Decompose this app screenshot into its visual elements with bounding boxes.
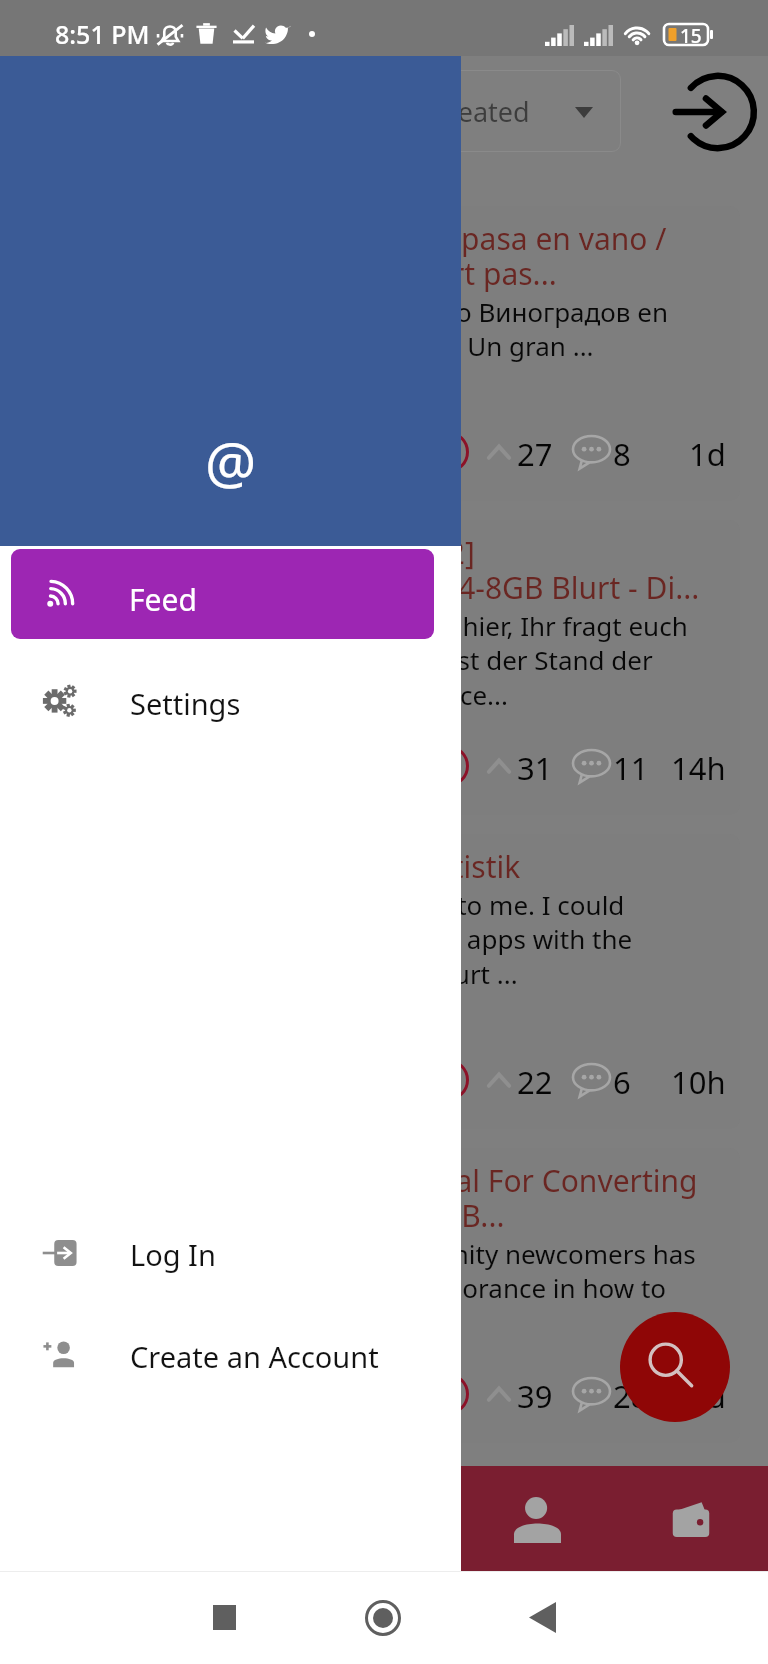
staticText: A very good friend of mine wrote to me. … <box>48 887 633 992</box>
staticText: 27 <box>517 433 553 475</box>
button[interactable]: Home <box>303 1571 463 1664</box>
staticText: 10h <box>671 1061 726 1103</box>
staticText: @ <box>205 423 257 501</box>
staticText: Created <box>430 93 530 130</box>
button[interactable]: Search <box>620 1312 730 1422</box>
staticText: Feed <box>129 579 197 620</box>
button[interactable]: Recent apps <box>144 1571 304 1664</box>
button[interactable]: Wallet <box>614 1466 768 1571</box>
staticText: 8:51 PM <box>55 17 150 51</box>
button[interactable]: Blurt und die Blurt Daten Statistik <box>28 834 740 1129</box>
staticText: 6 <box>613 1061 631 1103</box>
staticText: Nada de lo que se pasa nada pasa en vano… <box>48 218 667 294</box>
button[interactable]: [Blurt Device Serie Nummer 2] Raspberry … <box>28 520 740 815</box>
staticText: Blurt und die Blurt Daten Statistik <box>48 846 521 887</box>
button[interactable]: Settings <box>0 662 461 748</box>
staticText: [Blurt Device Serie Nummer 2] Raspberry … <box>48 532 700 608</box>
staticText: 28 <box>613 1375 649 1417</box>
staticText: Log In <box>130 1235 216 1274</box>
staticText: 14h <box>671 747 726 789</box>
staticText: 22 <box>517 1061 553 1103</box>
staticText: 15 <box>680 23 702 44</box>
button[interactable]: Log In <box>0 1213 461 1299</box>
staticText: Por Alexey Sergey Serguei Stepano Виногр… <box>48 294 668 364</box>
staticText: Create an Account <box>130 1337 379 1376</box>
button[interactable]: Create an Account <box>0 1315 461 1401</box>
button[interactable]: Profile <box>460 1466 614 1571</box>
button[interactable]: Created <box>418 70 621 152</box>
button[interactable]: Back <box>462 1571 622 1664</box>
staticText: 8 <box>613 433 631 475</box>
staticText: 2d <box>689 1375 726 1417</box>
staticText: 31 <box>517 747 553 789</box>
staticText: 11 <box>613 747 649 789</box>
staticText: Settings <box>130 684 241 723</box>
staticText: Hallo liebe Blurtians und Freunde hier, … <box>48 608 688 713</box>
staticText: A Quick And Very Dirty Tutorial For Conv… <box>48 1160 698 1236</box>
staticText: 1d <box>689 433 726 475</box>
button[interactable]: A Quick And Very Dirty Tutorial For Conv… <box>28 1148 740 1443</box>
button[interactable]: Nada de lo que se pasa nada pasa en vano… <box>28 206 740 501</box>
button[interactable]: Feed <box>11 549 434 639</box>
button[interactable]: Log in <box>663 64 759 160</box>
staticText: 39 <box>517 1375 553 1417</box>
staticText: The recent large influx of community new… <box>48 1236 696 1306</box>
